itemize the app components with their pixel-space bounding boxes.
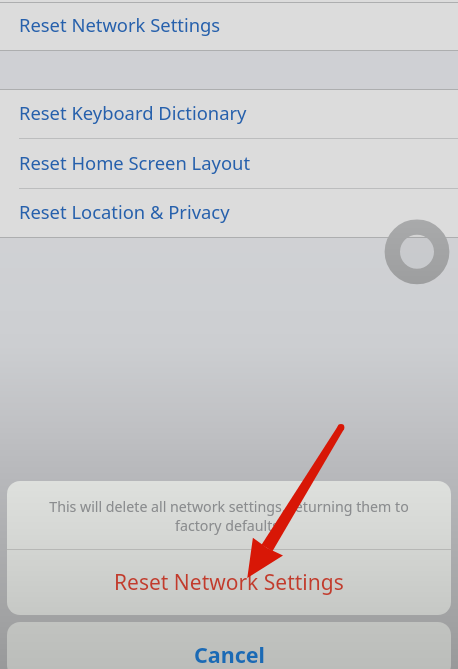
staticText: Reset Location & Privacy	[19, 199, 230, 224]
staticText: Reset Home Screen Layout	[19, 150, 251, 175]
staticText: Reset Network Settings	[19, 12, 221, 37]
staticText: Reset Network Settings	[114, 568, 344, 597]
button[interactable]: Reset Network Settings	[0, 3, 458, 50]
staticText: Reset Keyboard Dictionary	[19, 100, 247, 125]
button[interactable]: Reset Keyboard Dictionary	[0, 90, 458, 139]
button[interactable]: Reset Home Screen Layout	[0, 139, 458, 189]
staticText: This will delete all network settings, r…	[45, 497, 413, 535]
button[interactable]: Reset Location & Privacy	[0, 189, 458, 237]
button[interactable]: Reset Network Settings	[7, 550, 451, 615]
staticText: Cancel	[194, 640, 265, 669]
button[interactable]: Cancel	[7, 622, 451, 669]
